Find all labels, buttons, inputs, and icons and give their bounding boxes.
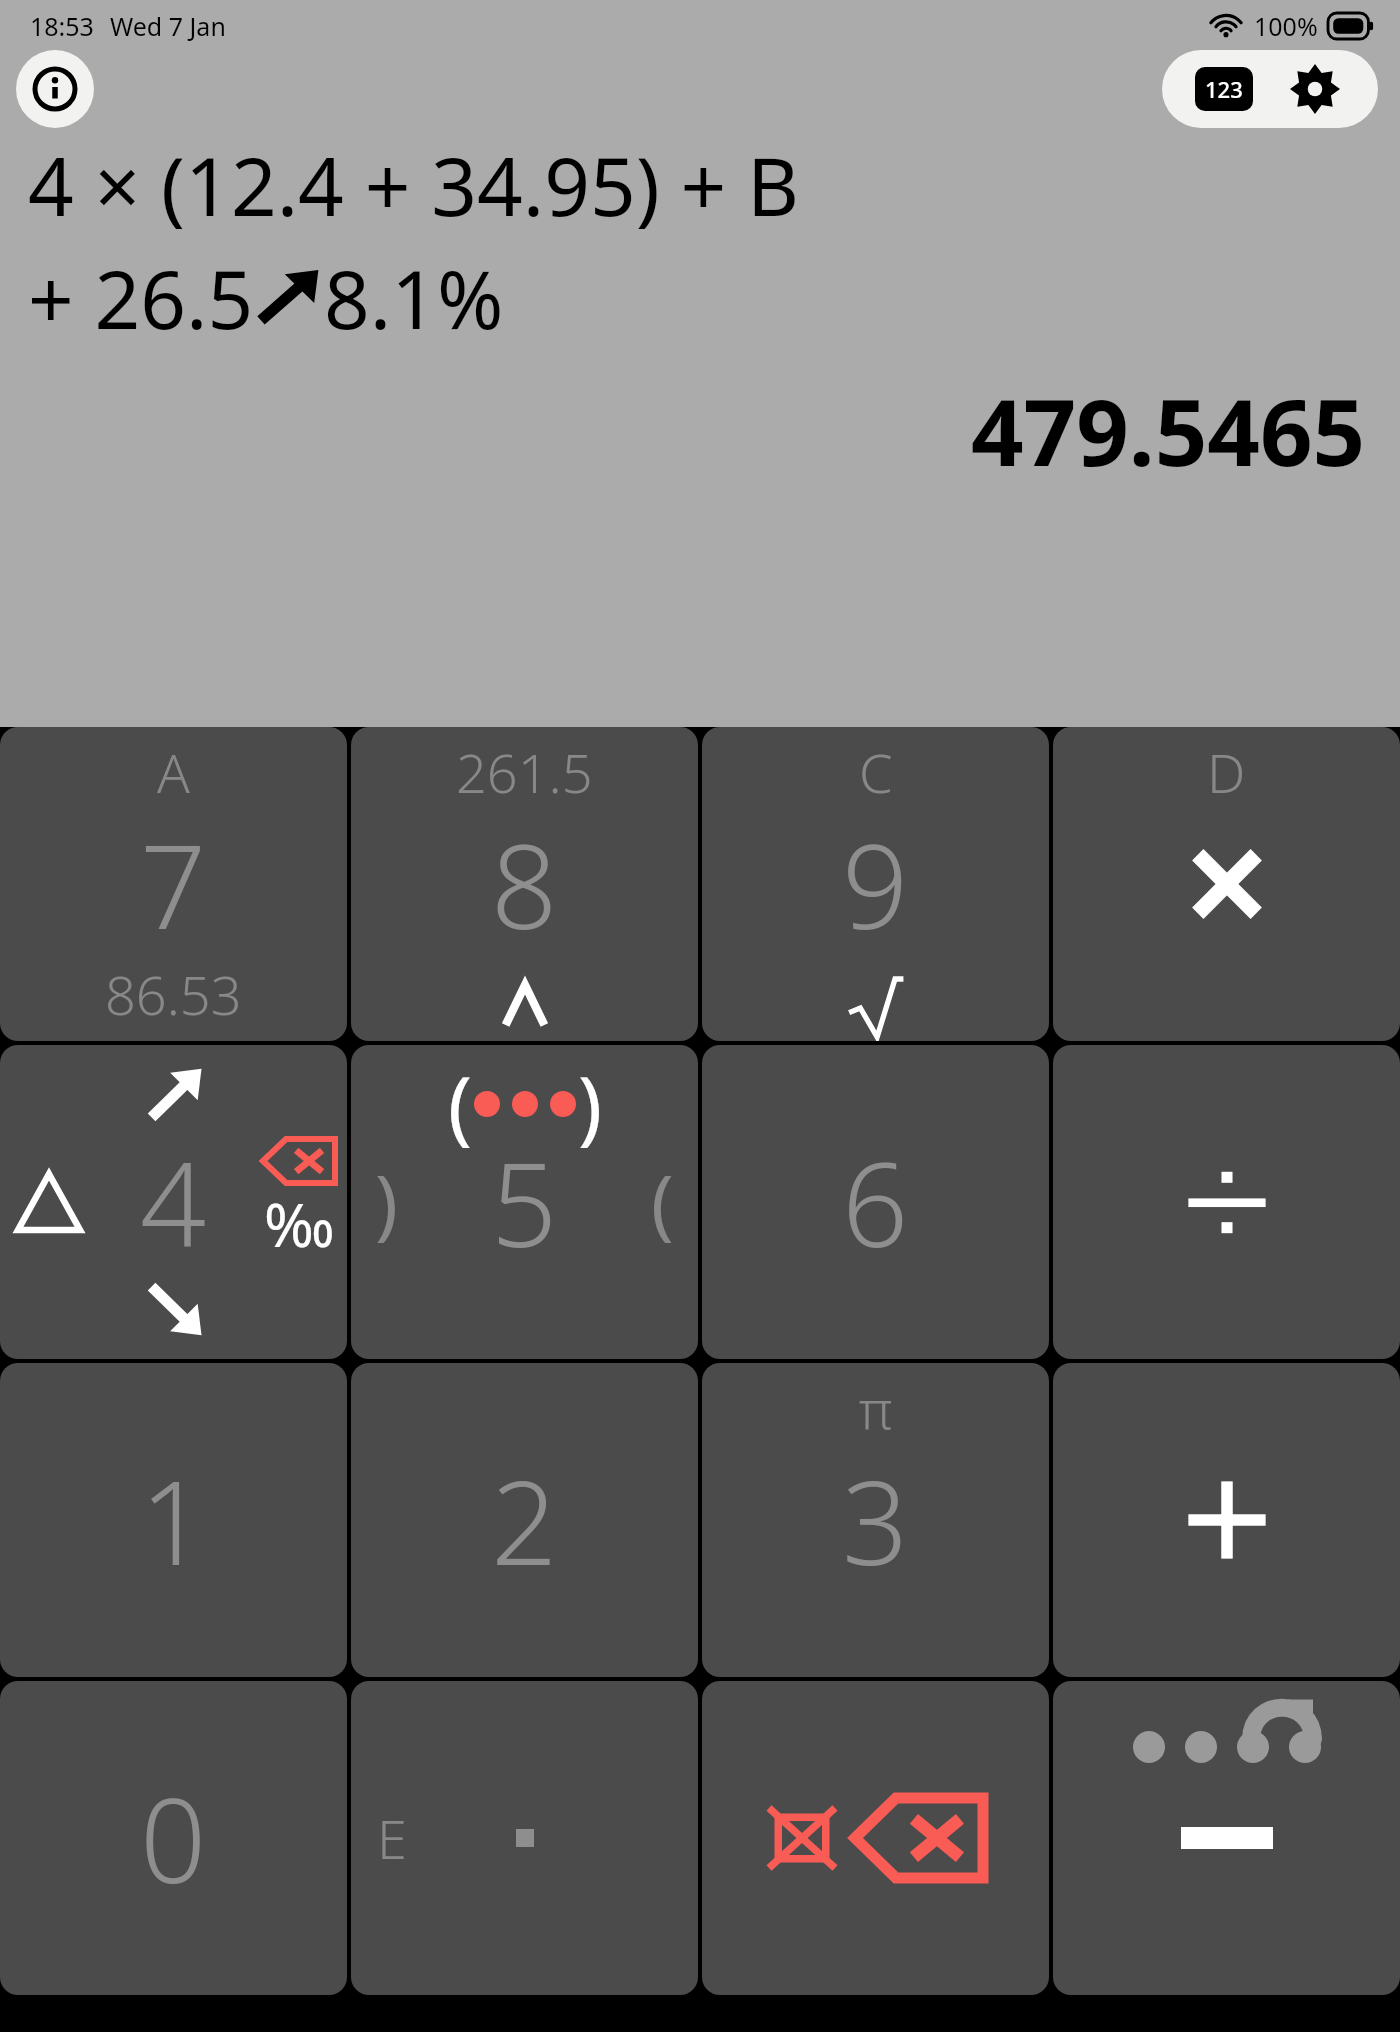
staticText: 8 xyxy=(491,805,558,963)
staticText: 8.1% xyxy=(324,243,504,352)
button[interactable]: 8 xyxy=(351,727,698,1041)
button[interactable]: Info xyxy=(16,50,94,128)
staticText: + 26.5 xyxy=(28,243,254,352)
button[interactable]: 1 xyxy=(0,1363,347,1677)
staticText: 100% xyxy=(1254,9,1318,43)
staticText: 4 xyxy=(140,1123,207,1281)
staticText: 0 xyxy=(140,1759,207,1917)
staticText: π xyxy=(859,1371,893,1445)
staticText: A xyxy=(157,735,190,809)
button[interactable]: 4 xyxy=(0,1045,347,1359)
staticText: 18:53 xyxy=(30,9,94,43)
staticText: 3 xyxy=(842,1441,909,1599)
staticText: 6 xyxy=(842,1123,909,1281)
button[interactable]: 6 xyxy=(702,1045,1049,1359)
staticText: E xyxy=(377,1801,407,1875)
staticText: 1 xyxy=(140,1441,207,1599)
staticText: D xyxy=(1207,735,1246,809)
staticText: Wed 7 Jan xyxy=(110,9,226,43)
button[interactable]: 2 xyxy=(351,1363,698,1677)
staticText: 7 xyxy=(140,805,207,963)
staticText: 4 × (12.4 + 34.95) + B xyxy=(28,130,800,239)
button[interactable]: Divide xyxy=(1053,1045,1400,1359)
staticText: 2 xyxy=(491,1441,558,1599)
staticText: 9 xyxy=(842,805,909,963)
button[interactable]: Multiply xyxy=(1053,727,1400,1041)
staticText: C xyxy=(859,735,893,809)
button[interactable]: 9 xyxy=(702,727,1049,1041)
staticText: ( xyxy=(448,1049,472,1158)
button[interactable]: 5 xyxy=(351,1045,698,1359)
button[interactable]: 0 xyxy=(0,1681,347,1995)
button[interactable]: 3 xyxy=(702,1363,1049,1677)
button[interactable]: Clear xyxy=(702,1681,1049,1995)
staticText: 479.5465 xyxy=(971,368,1366,493)
staticText: ) xyxy=(375,1150,398,1254)
staticText: 123 xyxy=(1205,74,1243,104)
staticText: 86.53 xyxy=(105,957,242,1031)
staticText: 261.5 xyxy=(456,735,593,809)
button[interactable]: Numeric mode xyxy=(1195,67,1253,111)
button[interactable]: Decimal point xyxy=(351,1681,698,1995)
button[interactable]: Settings xyxy=(1285,59,1345,119)
button[interactable]: 7 xyxy=(0,727,347,1041)
staticText: ) xyxy=(578,1049,602,1158)
button[interactable]: Plus xyxy=(1053,1363,1400,1677)
staticText: 5 xyxy=(491,1123,558,1281)
staticText: ‰ xyxy=(264,1183,335,1265)
button[interactable]: Minus xyxy=(1053,1681,1400,1995)
staticText: ( xyxy=(651,1150,674,1254)
